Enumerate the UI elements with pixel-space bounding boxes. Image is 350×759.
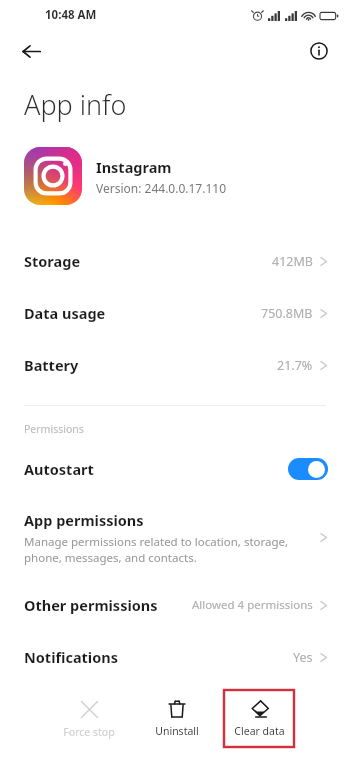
staticText: Storage [24, 251, 81, 271]
button[interactable]: App details [300, 32, 338, 70]
button[interactable]: Clear data [224, 690, 294, 747]
button[interactable]: Force stop [56, 693, 122, 745]
staticText: Data usage [24, 303, 106, 323]
button[interactable]: Autostart toggle, on [288, 458, 328, 480]
staticText: Notifications [24, 647, 118, 667]
button[interactable]: Storage [0, 235, 350, 287]
staticText: 21.7% [277, 357, 313, 374]
staticText: Uninstall [155, 724, 199, 738]
button[interactable]: Battery [0, 339, 350, 391]
staticText: Instagram [96, 157, 172, 177]
button[interactable]: App permissions [0, 500, 350, 575]
staticText: Manage permissions related to location, … [24, 534, 289, 565]
staticText: 750.8MB [261, 305, 313, 322]
staticText: Other permissions [24, 595, 158, 615]
button[interactable]: Notifications [0, 631, 350, 683]
staticText: 412MB [272, 253, 313, 270]
staticText: Clear data [234, 724, 285, 738]
staticText: App permissions [24, 510, 144, 530]
button[interactable]: Autostart [0, 446, 350, 492]
staticText: App info [24, 86, 127, 123]
button[interactable]: Other permissions [0, 579, 350, 631]
staticText: Force stop [63, 725, 115, 739]
staticText: 10:48 AM [45, 7, 97, 23]
button[interactable]: Instagram [0, 145, 350, 207]
staticText: Allowed 4 permissions [192, 597, 313, 613]
staticText: Version: 244.0.0.17.110 [96, 180, 227, 196]
button[interactable]: Data usage [0, 287, 350, 339]
staticText: Battery [24, 355, 79, 375]
staticText: Autostart [24, 459, 94, 479]
staticText: Yes [293, 649, 313, 666]
button[interactable]: Back [12, 32, 50, 70]
button[interactable]: Uninstall [144, 693, 210, 745]
staticText: Permissions [24, 422, 84, 436]
